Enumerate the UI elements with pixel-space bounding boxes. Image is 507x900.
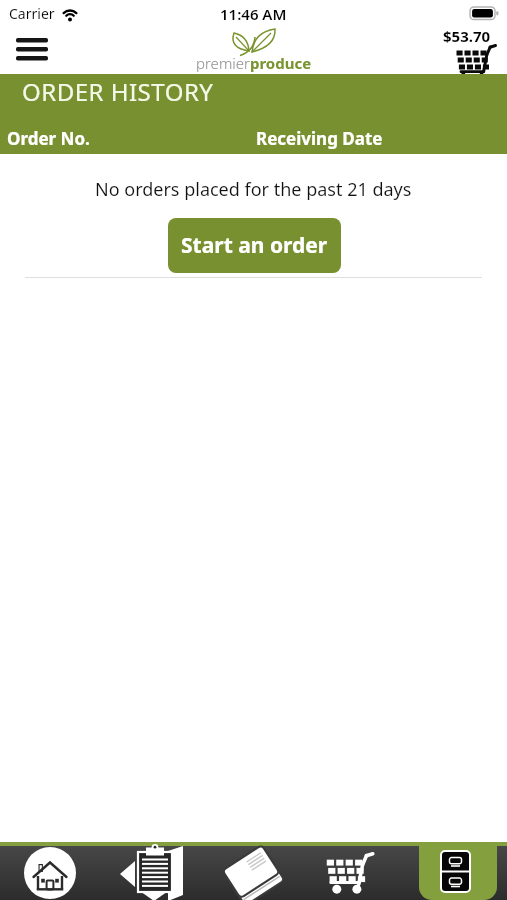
staticText: No orders placed for the past 21 days bbox=[95, 177, 412, 202]
staticText: Receiving Date bbox=[256, 127, 383, 150]
button[interactable] bbox=[419, 842, 497, 900]
button[interactable] bbox=[24, 847, 76, 899]
button[interactable]: Start an order bbox=[168, 218, 341, 273]
staticText: Carrier bbox=[9, 4, 55, 23]
button[interactable] bbox=[8, 30, 56, 70]
staticText: $53.70 bbox=[443, 26, 491, 46]
staticText: 11:46 AM bbox=[220, 4, 287, 24]
staticText: ORDER HISTORY bbox=[22, 75, 214, 108]
button[interactable] bbox=[218, 844, 286, 900]
staticText: premierproduce bbox=[196, 53, 312, 73]
staticText: Order No. bbox=[7, 127, 90, 150]
button[interactable] bbox=[320, 846, 376, 900]
button[interactable]: $53.70 bbox=[436, 26, 498, 76]
staticText: Start an order bbox=[181, 231, 328, 260]
button[interactable] bbox=[118, 845, 186, 900]
